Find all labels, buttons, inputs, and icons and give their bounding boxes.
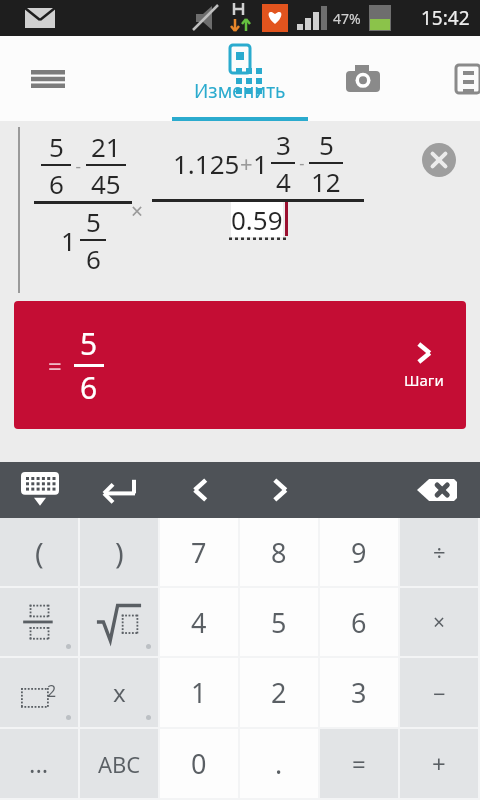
button[interactable]: ...: [0, 729, 78, 798]
staticText: 3: [351, 674, 367, 711]
staticText: 2: [47, 680, 57, 702]
staticText: 5: [319, 127, 334, 162]
button[interactable]: 3: [320, 658, 398, 727]
staticText: .: [275, 745, 283, 782]
staticText: =: [48, 349, 62, 382]
button[interactable]: −: [400, 658, 478, 727]
staticText: (: [35, 533, 44, 572]
staticText: x: [113, 676, 126, 709]
button[interactable]: 9: [320, 518, 398, 586]
staticText: ): [115, 533, 124, 572]
staticText: 1: [191, 674, 207, 711]
button[interactable]: FRAC: [0, 588, 78, 656]
button[interactable]: ABC: [80, 729, 158, 798]
button[interactable]: 2: [240, 658, 318, 727]
staticText: 5: [49, 129, 64, 164]
staticText: 6: [49, 166, 64, 201]
staticText: =: [352, 747, 366, 780]
staticText: +: [432, 747, 446, 780]
staticText: 0: [191, 745, 207, 782]
button[interactable]: Previous: [172, 462, 228, 518]
button[interactable]: Backspace: [408, 462, 466, 518]
staticText: 1.125: [173, 146, 240, 181]
staticText: ABC: [98, 749, 141, 779]
button[interactable]: SQ: [0, 658, 78, 727]
staticText: 45: [91, 166, 121, 201]
staticText: 2: [271, 674, 287, 711]
button[interactable]: 8: [240, 518, 318, 586]
staticText: -: [295, 152, 309, 174]
staticText: Изменить: [194, 78, 286, 104]
staticText: 5: [271, 604, 287, 641]
button[interactable]: Next: [252, 462, 308, 518]
button[interactable]: Hide keyboard: [12, 462, 68, 518]
button[interactable]: Camera: [330, 46, 396, 112]
staticText: 6: [351, 604, 367, 641]
button[interactable]: +: [400, 729, 478, 798]
staticText: 3: [276, 127, 291, 162]
button[interactable]: Enter: [90, 462, 148, 518]
staticText: 4: [191, 604, 207, 641]
button[interactable]: 0: [160, 729, 238, 798]
staticText: 1: [253, 146, 268, 181]
button[interactable]: ): [80, 518, 158, 586]
staticText: -: [71, 154, 86, 177]
staticText: 8: [271, 534, 287, 571]
staticText: 5: [86, 204, 101, 239]
staticText: 6: [80, 367, 98, 408]
staticText: 21: [91, 129, 121, 164]
button[interactable]: x: [80, 658, 158, 727]
button[interactable]: 6: [320, 588, 398, 656]
staticText: 5: [80, 323, 98, 364]
staticText: 15:42: [421, 5, 470, 31]
staticText: ×: [131, 197, 144, 226]
staticText: 0.59: [231, 202, 283, 237]
staticText: ...: [29, 747, 49, 780]
button[interactable]: ×: [400, 588, 478, 656]
button[interactable]: .: [240, 729, 318, 798]
button[interactable]: Clear: [418, 139, 460, 181]
button[interactable]: SQRT: [80, 588, 158, 656]
button[interactable]: History: [456, 47, 480, 111]
staticText: 47%: [333, 9, 361, 28]
staticText: +: [240, 148, 253, 178]
button[interactable]: (: [0, 518, 78, 586]
staticText: 9: [351, 534, 367, 571]
button[interactable]: Изменить: [172, 36, 308, 121]
staticText: −: [433, 678, 446, 708]
staticText: ÷: [433, 537, 446, 567]
button[interactable]: =: [320, 729, 398, 798]
button[interactable]: 1: [160, 658, 238, 727]
staticText: ×: [433, 608, 446, 637]
staticText: 1: [61, 223, 76, 258]
staticText: 4: [276, 164, 291, 199]
button[interactable]: 4: [160, 588, 238, 656]
button[interactable]: ÷: [400, 518, 478, 586]
staticText: 6: [86, 241, 101, 276]
staticText: 7: [191, 534, 207, 571]
staticText: 12: [311, 164, 341, 199]
button[interactable]: =: [14, 301, 466, 429]
button[interactable]: 7: [160, 518, 238, 586]
button[interactable]: Menu: [16, 47, 80, 111]
staticText: Шаги: [404, 370, 444, 390]
button[interactable]: 5: [240, 588, 318, 656]
